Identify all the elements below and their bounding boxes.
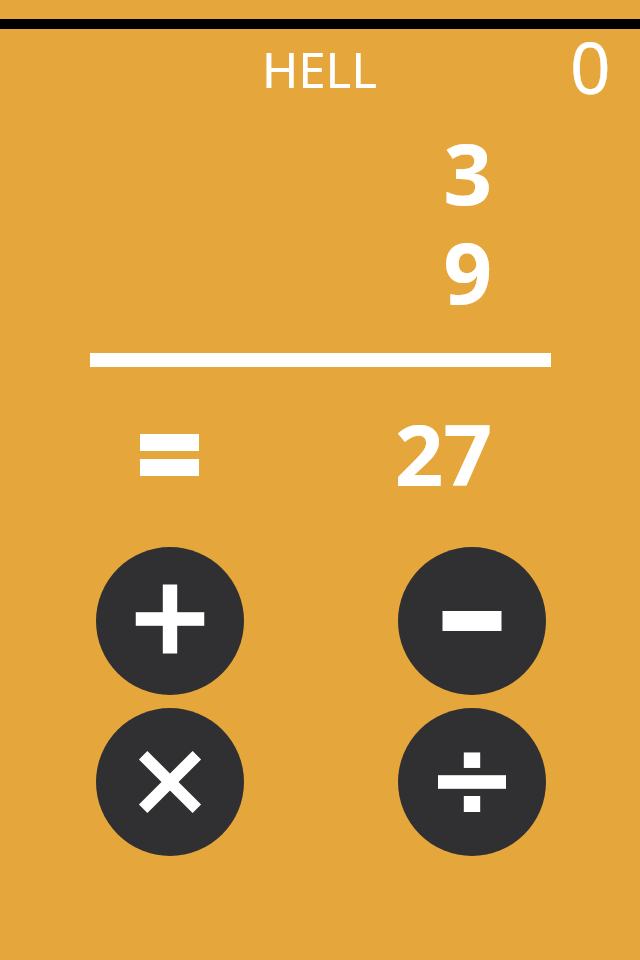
staticText: 3 <box>292 114 492 230</box>
button[interactable]: Add <box>96 547 244 695</box>
staticText: 27 <box>292 395 492 511</box>
staticText: 9 <box>292 213 492 329</box>
staticText: 0 <box>570 18 611 115</box>
button[interactable]: Divide <box>398 708 546 856</box>
button[interactable]: Subtract <box>398 547 546 695</box>
staticText: HELL <box>262 36 377 103</box>
button[interactable]: Multiply <box>96 708 244 856</box>
button[interactable]: HELL <box>262 36 377 103</box>
